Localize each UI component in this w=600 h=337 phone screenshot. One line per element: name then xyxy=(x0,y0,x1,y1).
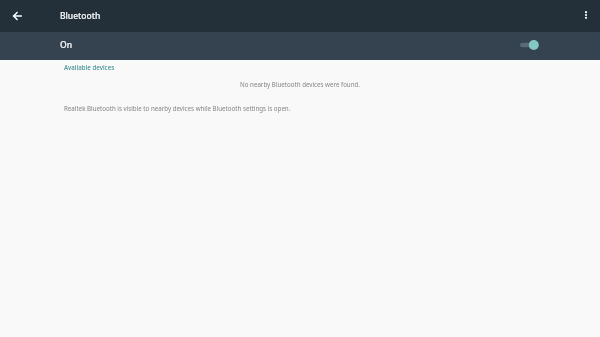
button[interactable]: On xyxy=(0,32,600,60)
staticText: Realtek Bluetooth is visible to nearby d… xyxy=(64,104,291,112)
button[interactable]: Available devices xyxy=(64,63,115,71)
staticText: On xyxy=(60,39,72,51)
staticText: No nearby Bluetooth devices were found. xyxy=(0,80,600,88)
button[interactable]: Navigate up xyxy=(7,5,29,27)
button[interactable]: More options xyxy=(575,4,597,26)
button[interactable]: Bluetooth, on xyxy=(519,37,539,53)
staticText: Bluetooth xyxy=(60,10,101,22)
